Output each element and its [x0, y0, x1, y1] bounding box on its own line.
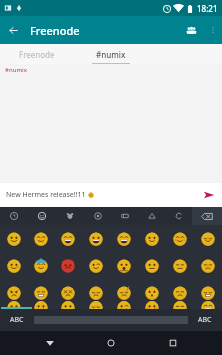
button[interactable]: Emoji [82, 225, 110, 252]
button[interactable]: Emoji [194, 225, 222, 252]
button[interactable]: Emoji [166, 279, 194, 306]
button[interactable]: Emoji [194, 306, 222, 309]
button[interactable]: Emoji [54, 252, 82, 279]
staticText: ABC [198, 315, 212, 325]
button[interactable]: #numix [74, 44, 148, 64]
button[interactable]: ABC [188, 309, 222, 331]
staticText: Freenode [19, 49, 55, 60]
button[interactable]: Objects [165, 207, 192, 225]
button[interactable]: Activities [111, 207, 138, 225]
button[interactable]: Emoji [194, 279, 222, 306]
button[interactable]: Emoji [0, 252, 27, 279]
button[interactable]: Emoji [54, 279, 82, 306]
button[interactable]: Emoji [82, 279, 110, 306]
button[interactable]: ABC [0, 309, 34, 331]
button[interactable]: Emoji [110, 279, 138, 306]
button[interactable]: Emoji [0, 279, 27, 306]
button[interactable]: Members [178, 17, 204, 43]
button[interactable]: Emoji [110, 306, 138, 309]
staticText: #numix [5, 66, 27, 74]
button[interactable]: Emoji [138, 279, 166, 306]
button[interactable]: More options [204, 17, 222, 43]
button[interactable]: Emoji [27, 279, 54, 306]
button[interactable]: Emoji [138, 225, 166, 252]
staticText: Freenode [30, 23, 178, 38]
button[interactable]: Emoji [110, 252, 138, 279]
button[interactable]: Home [99, 331, 123, 355]
button[interactable]: Emoji [110, 225, 138, 252]
button[interactable]: Emoji [82, 306, 110, 309]
button[interactable]: Emoji [138, 306, 166, 309]
button[interactable]: Back [0, 17, 26, 43]
staticText: New Hermes release!!11 [6, 190, 88, 200]
button[interactable]: Emoji [166, 306, 194, 309]
button[interactable]: Emoji [138, 252, 166, 279]
button[interactable]: Recents [161, 331, 185, 355]
button[interactable]: Travel [138, 207, 165, 225]
button[interactable]: Backspace [192, 207, 222, 225]
button[interactable]: Emoji [54, 225, 82, 252]
button[interactable]: Emoji [194, 252, 222, 279]
button[interactable]: Back [38, 331, 62, 355]
button[interactable]: Freenode [0, 44, 74, 64]
button[interactable]: Emoji [0, 306, 27, 309]
button[interactable]: Emoji [27, 306, 54, 309]
button[interactable]: Emoji [27, 225, 54, 252]
button[interactable]: Animals [56, 207, 84, 225]
staticText: 18:21 [197, 3, 218, 14]
staticText: ABC [10, 315, 24, 325]
staticText: #numix [96, 49, 126, 60]
button[interactable]: Emoji [166, 225, 194, 252]
button[interactable]: Send [196, 183, 222, 207]
button[interactable]: Emoji [166, 252, 194, 279]
button[interactable]: Smileys [28, 207, 56, 225]
button[interactable]: Emoji [0, 225, 27, 252]
button[interactable]: Emoji [27, 252, 54, 279]
button[interactable]: Recent [0, 207, 28, 225]
button[interactable]: Emoji [54, 306, 82, 309]
button[interactable]: Emoji [82, 252, 110, 279]
button[interactable]: Food [84, 207, 111, 225]
